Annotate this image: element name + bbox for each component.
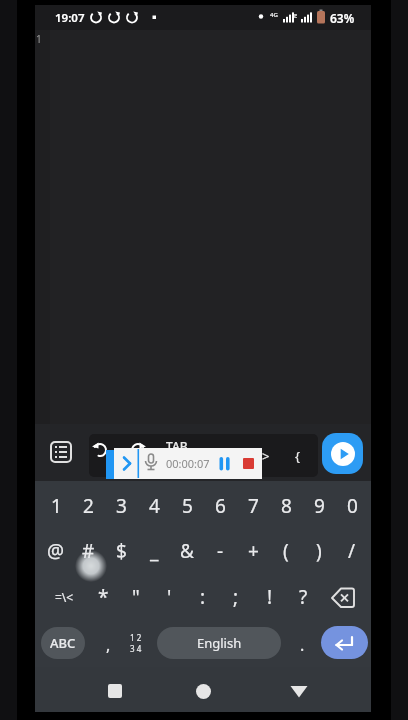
button[interactable]: 6	[203, 483, 237, 529]
button[interactable]: 7	[236, 483, 270, 529]
button[interactable]: 2	[71, 483, 105, 529]
button[interactable]: _	[137, 528, 171, 574]
staticText: #	[82, 538, 95, 564]
staticText: E	[294, 12, 298, 20]
button[interactable]: :	[186, 574, 220, 620]
staticText: +	[248, 538, 259, 564]
button[interactable]: English	[157, 627, 281, 659]
button[interactable]	[89, 439, 111, 461]
staticText: .	[300, 634, 305, 656]
button[interactable]: 1	[39, 483, 73, 529]
button[interactable]: .	[285, 622, 319, 668]
staticText: 19:07	[55, 10, 85, 26]
staticText: =\<	[55, 589, 74, 605]
staticText: 4G	[270, 11, 278, 19]
staticText: English	[197, 634, 242, 652]
staticText: ;	[233, 584, 239, 610]
staticText: @	[47, 538, 65, 564]
button[interactable]: @	[39, 528, 73, 574]
button[interactable]: 4	[137, 483, 171, 529]
staticText: -	[217, 538, 224, 564]
button[interactable]: =\<	[47, 574, 81, 620]
button[interactable]	[285, 677, 313, 705]
button[interactable]: 0	[335, 483, 369, 529]
button[interactable]	[325, 580, 365, 616]
staticText: $	[116, 538, 127, 564]
button[interactable]: 8	[269, 483, 303, 529]
button[interactable]: !	[253, 574, 287, 620]
button[interactable]: -	[203, 528, 237, 574]
staticText: 63%	[330, 10, 355, 26]
staticText: TAB	[166, 438, 188, 454]
button[interactable]: /	[335, 528, 369, 574]
staticText: 4	[149, 493, 160, 519]
staticText: /	[348, 538, 356, 564]
staticText: 5	[182, 493, 193, 519]
staticText: 1 2	[130, 632, 142, 643]
button[interactable]: {	[287, 444, 307, 468]
button[interactable]: #	[71, 528, 105, 574]
button[interactable]: )	[302, 528, 336, 574]
staticText: &	[180, 538, 194, 564]
button[interactable]: ,	[91, 622, 125, 668]
staticText: ,	[106, 634, 111, 656]
staticText: 1	[36, 32, 42, 46]
staticText: :	[200, 584, 206, 610]
button[interactable]	[114, 448, 139, 479]
staticText: )	[316, 538, 322, 564]
staticText: ?	[299, 584, 308, 610]
staticText: 3	[116, 493, 127, 519]
button[interactable]	[101, 677, 129, 705]
staticText: 8	[281, 493, 292, 519]
staticText: *	[98, 584, 109, 610]
button[interactable]: 9	[302, 483, 336, 529]
staticText: 2	[83, 493, 94, 519]
staticText: 6	[215, 493, 226, 519]
button[interactable]: $	[104, 528, 138, 574]
button[interactable]: +	[236, 528, 270, 574]
button[interactable]	[189, 677, 217, 705]
staticText: {	[295, 447, 300, 465]
button[interactable]	[47, 438, 75, 466]
staticText: !	[267, 584, 273, 610]
staticText: "	[132, 584, 140, 610]
button[interactable]	[321, 626, 368, 659]
staticText: ABC	[50, 634, 76, 652]
button[interactable]: 1 2	[122, 627, 150, 659]
button[interactable]: 5	[170, 483, 204, 529]
button[interactable]: (	[269, 528, 303, 574]
staticText: (	[283, 538, 289, 564]
button[interactable]	[237, 448, 259, 479]
staticText: 7	[248, 493, 259, 519]
button[interactable]	[322, 433, 363, 474]
button[interactable]	[215, 448, 237, 479]
button[interactable]	[127, 439, 149, 461]
staticText: _	[150, 538, 159, 564]
staticText: 0	[347, 493, 358, 519]
staticText: '	[167, 584, 172, 610]
button[interactable]: *	[86, 574, 120, 620]
staticText: 00:00:07	[166, 456, 210, 471]
button[interactable]: &	[170, 528, 204, 574]
staticText: >	[262, 447, 270, 465]
staticText: 9	[314, 493, 325, 519]
button[interactable]: ;	[219, 574, 253, 620]
staticText: 1	[51, 493, 62, 519]
button[interactable]: TAB	[160, 436, 194, 456]
button[interactable]: "	[119, 574, 153, 620]
button[interactable]: 3	[104, 483, 138, 529]
button[interactable]: ?	[286, 574, 320, 620]
staticText: 3 4	[130, 643, 142, 654]
button[interactable]: '	[152, 574, 186, 620]
button[interactable]: >	[256, 444, 276, 468]
button[interactable]: ABC	[41, 627, 85, 659]
